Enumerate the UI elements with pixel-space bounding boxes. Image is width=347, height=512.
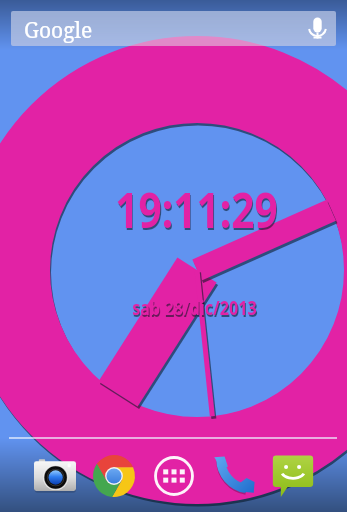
button[interactable]: Messaging — [272, 455, 314, 497]
staticText: Google — [24, 16, 93, 45]
button[interactable]: Chrome — [93, 455, 135, 497]
button[interactable]: Apps — [153, 455, 195, 497]
staticText: sab 28/dic/2013 — [51, 296, 339, 512]
button[interactable]: Phone — [213, 455, 255, 497]
staticText: 19:11:29 — [53, 178, 341, 512]
button[interactable]: Google — [11, 11, 336, 46]
button[interactable]: Camera — [34, 455, 76, 497]
button[interactable]: Voice search — [299, 11, 336, 46]
staticText: 19:11:29 — [52, 176, 340, 512]
staticText: sab 28/dic/2013 — [50, 294, 338, 512]
